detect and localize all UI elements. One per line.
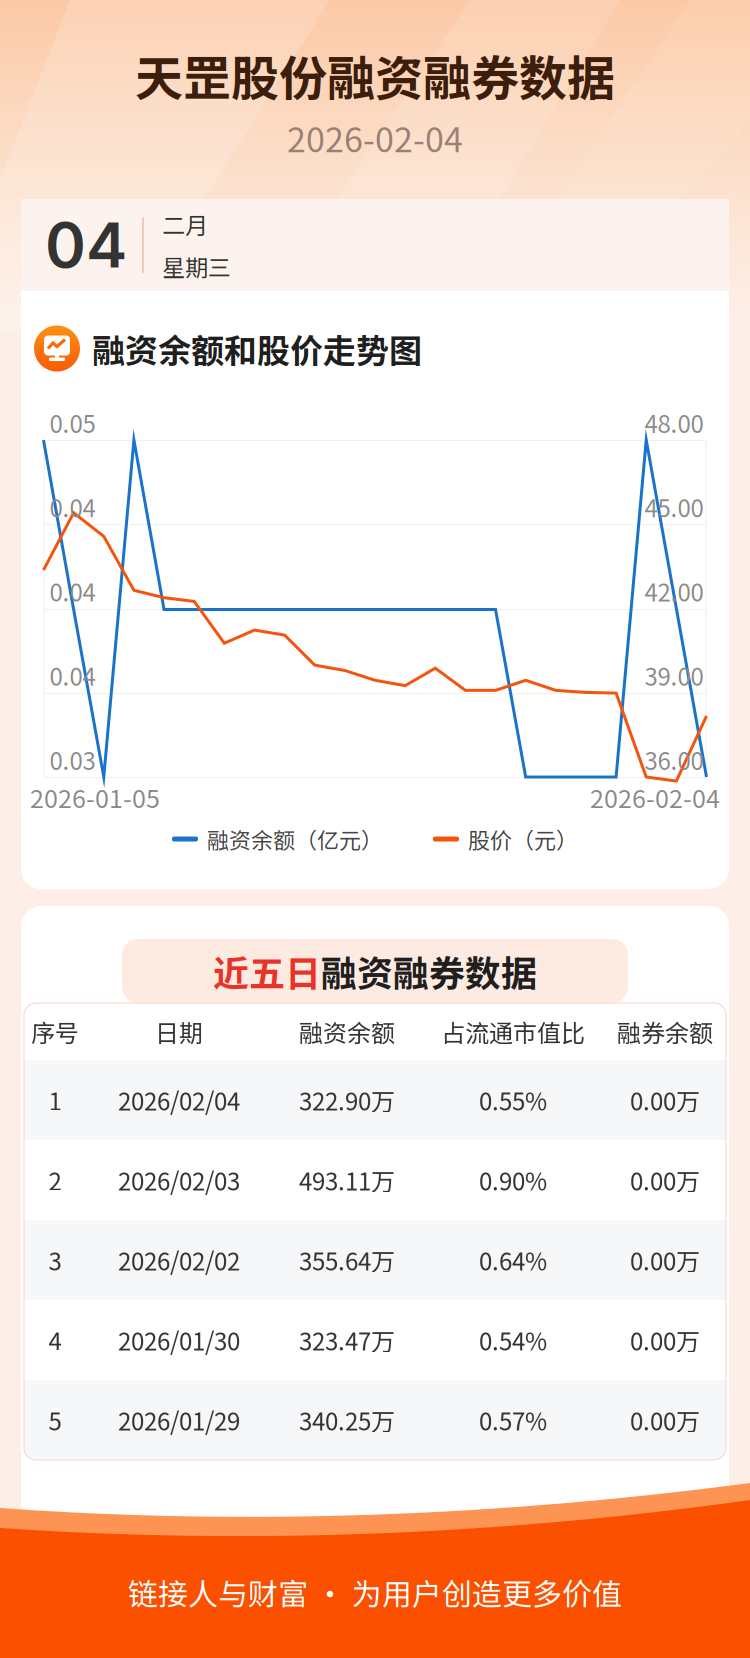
staticText: 355.64万 — [299, 1243, 395, 1277]
staticText: 5 — [48, 1403, 61, 1437]
staticText: 0.03 — [49, 742, 95, 777]
staticText: 3 — [48, 1243, 61, 1277]
staticText: 0.57% — [479, 1403, 547, 1437]
staticText: 322.90万 — [299, 1083, 395, 1117]
staticText: 0.04 — [49, 489, 95, 524]
staticText: 融券余额 — [617, 1014, 713, 1049]
staticText: 占流通市值比 — [441, 1014, 585, 1049]
staticText: 45.00 — [644, 489, 703, 524]
staticText: 04 — [45, 207, 127, 282]
staticText: 42.00 — [644, 574, 703, 608]
staticText: 链接人与财富 · 为用户创造更多价值 — [128, 1571, 622, 1614]
staticText: 0.05 — [49, 405, 95, 440]
staticText: 融资余额（亿元） — [207, 823, 383, 855]
staticText: 39.00 — [644, 658, 703, 693]
staticText: 日期 — [155, 1014, 203, 1049]
staticText: 0.90% — [479, 1163, 547, 1197]
staticText: 二月 — [162, 207, 208, 240]
staticText: 0.04 — [49, 658, 95, 693]
staticText: 融资余额 — [299, 1014, 395, 1049]
staticText: 天罡股份融资融券数据 — [135, 40, 615, 110]
staticText: 2026-02-04 — [287, 113, 463, 162]
staticText: 1 — [48, 1083, 61, 1117]
staticText: 493.11万 — [299, 1163, 395, 1197]
staticText: 0.04 — [49, 574, 95, 608]
staticText: 0.00万 — [630, 1163, 700, 1197]
staticText: 48.00 — [644, 405, 703, 440]
staticText: 0.00万 — [630, 1403, 700, 1437]
staticText: 融资余额和股价走势图 — [92, 325, 422, 372]
staticText: 2026-02-04 — [590, 779, 720, 815]
staticText: 融资融券数据 — [321, 945, 537, 997]
staticText: 4 — [48, 1323, 61, 1357]
staticText: 0.00万 — [630, 1083, 700, 1117]
staticText: 0.54% — [479, 1323, 547, 1357]
staticText: 323.47万 — [299, 1323, 395, 1357]
staticText: 0.55% — [479, 1083, 547, 1117]
staticText: 近五日 — [213, 945, 321, 997]
staticText: 2026/01/29 — [118, 1403, 240, 1437]
staticText: 36.00 — [644, 742, 703, 777]
staticText: 2026/01/30 — [118, 1323, 240, 1357]
staticText: 0.64% — [479, 1243, 547, 1277]
staticText: 序号 — [31, 1014, 79, 1049]
staticText: 2026-01-05 — [30, 779, 160, 815]
staticText: 0.00万 — [630, 1323, 700, 1357]
staticText: 2 — [48, 1163, 61, 1197]
staticText: 2026/02/03 — [118, 1163, 240, 1197]
staticText: 0.00万 — [630, 1243, 700, 1277]
staticText: 股价（元） — [468, 823, 578, 855]
staticText: 2026/02/02 — [118, 1243, 240, 1277]
staticText: 340.25万 — [299, 1403, 395, 1437]
staticText: 星期三 — [162, 249, 231, 283]
staticText: 2026/02/04 — [118, 1083, 240, 1117]
